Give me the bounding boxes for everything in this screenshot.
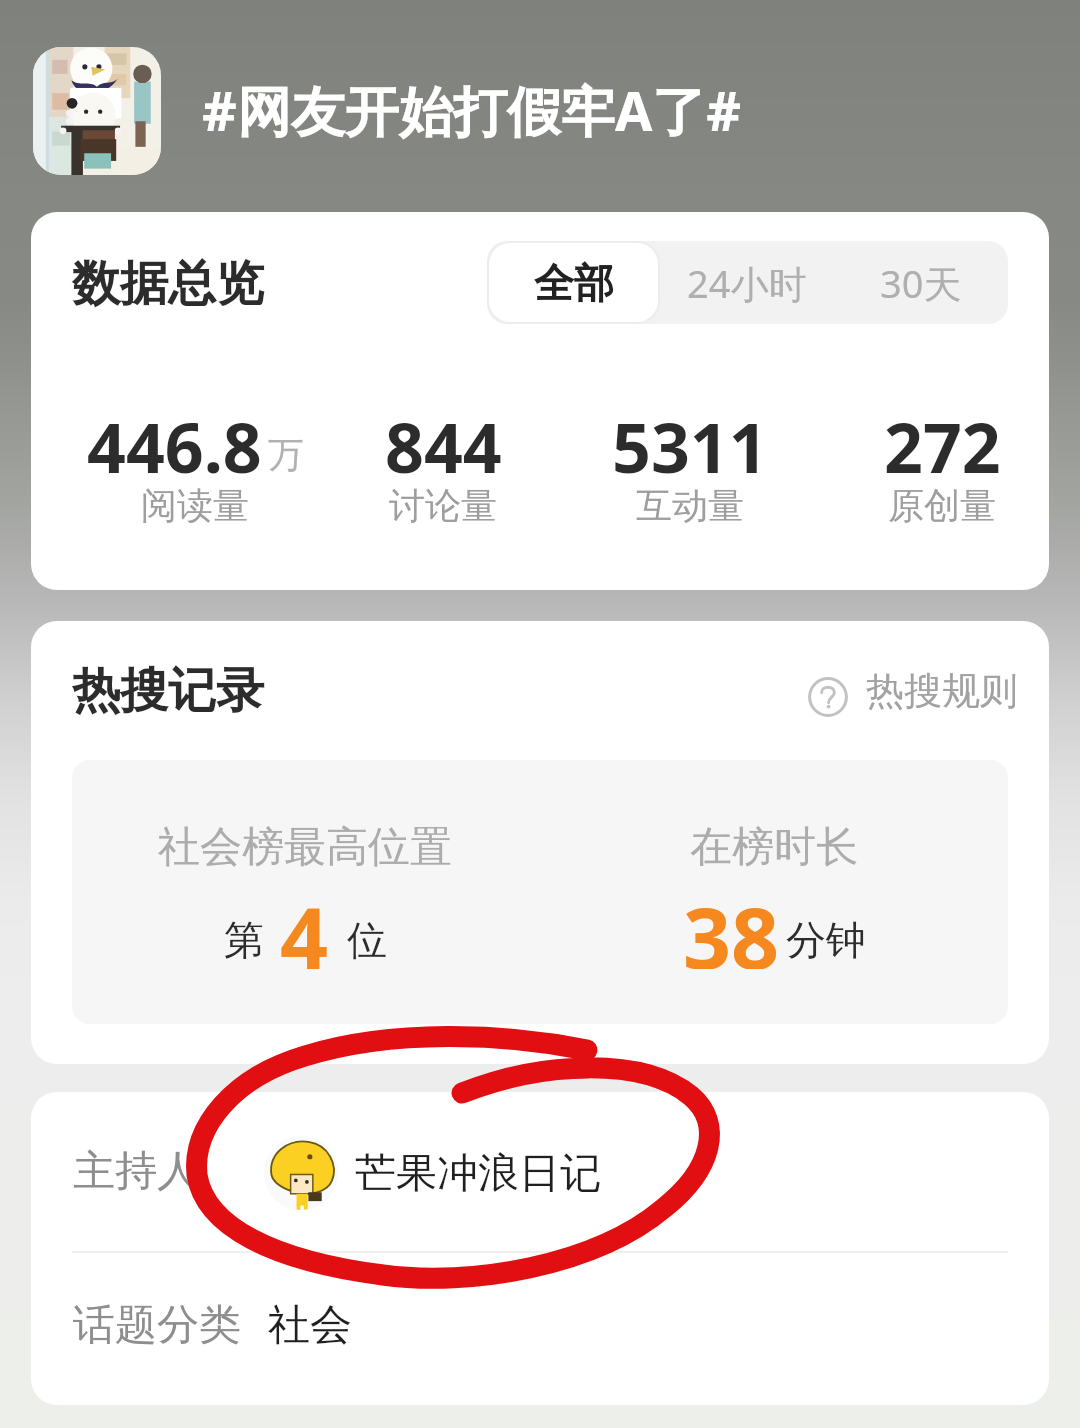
staticText: 5311 xyxy=(612,400,768,480)
button[interactable]: 24小时 xyxy=(660,241,834,324)
staticText: 全部 xyxy=(534,258,614,308)
staticText: 38 xyxy=(683,879,780,969)
staticText: 844 xyxy=(385,400,502,480)
staticText: 数据总览 xyxy=(72,254,264,314)
staticText: 位 xyxy=(347,915,387,965)
staticText: 热搜记录 xyxy=(72,661,264,721)
staticText: 30天 xyxy=(880,257,962,309)
staticText: 分钟 xyxy=(786,915,866,965)
staticText: 446.8 xyxy=(87,400,262,480)
staticText: 在榜时长 xyxy=(690,821,858,871)
staticText: 阅读量 xyxy=(141,483,249,523)
staticText: 社会榜最高位置 xyxy=(158,821,452,871)
staticText: 热搜规则 xyxy=(866,667,1018,715)
staticText: 讨论量 xyxy=(389,483,497,523)
button[interactable]: 主持人 xyxy=(31,1092,1049,1251)
button[interactable]: 30天 xyxy=(834,241,1008,324)
staticText: 芒果冲浪日记 xyxy=(355,1148,601,1200)
button[interactable]: 热搜规则 xyxy=(803,666,1049,714)
staticText: 互动量 xyxy=(636,483,744,523)
staticText: 4 xyxy=(280,879,329,969)
staticText: 272 xyxy=(884,400,1001,480)
staticText: 社会 xyxy=(268,1299,352,1352)
button[interactable]: 全部 xyxy=(489,243,658,322)
button[interactable]: Topic icon xyxy=(33,47,161,175)
staticText: 主持人 xyxy=(73,1145,199,1198)
staticText: 原创量 xyxy=(888,483,996,523)
staticText: 万 xyxy=(268,432,304,477)
staticText: 24小时 xyxy=(687,257,807,309)
staticText: 第 xyxy=(224,915,264,965)
staticText: 话题分类 xyxy=(73,1299,241,1352)
staticText: #网友开始打假牢A了# xyxy=(202,73,742,147)
